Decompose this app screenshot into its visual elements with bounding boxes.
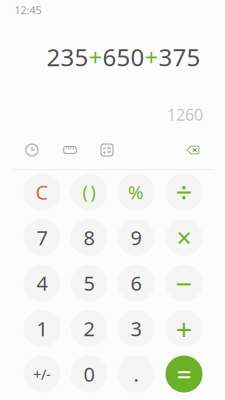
staticText: 6: [130, 270, 141, 296]
button[interactable]: 1: [23, 310, 60, 347]
staticText: 375: [158, 41, 200, 73]
button[interactable]: 4: [23, 264, 60, 301]
staticText: ( ): [82, 180, 95, 203]
staticText: +: [175, 309, 192, 348]
staticText: −: [175, 263, 192, 302]
staticText: .: [133, 361, 138, 387]
staticText: +/-: [33, 364, 51, 384]
button[interactable]: 7: [23, 219, 60, 256]
staticText: +: [144, 41, 158, 73]
button[interactable]: Backspace: [177, 137, 209, 163]
button[interactable]: History: [17, 137, 47, 163]
button[interactable]: ÷: [165, 173, 202, 210]
staticText: ÷: [175, 172, 192, 211]
button[interactable]: 2: [70, 310, 107, 347]
staticText: +: [88, 41, 102, 73]
button[interactable]: 3: [117, 310, 154, 347]
staticText: 4: [36, 270, 47, 296]
staticText: 1260: [167, 104, 203, 125]
staticText: 650: [102, 41, 144, 73]
staticText: 2: [83, 315, 94, 342]
button[interactable]: 6: [117, 264, 154, 301]
button[interactable]: −: [165, 264, 202, 301]
button[interactable]: Unit converter: [55, 137, 85, 163]
button[interactable]: 9: [117, 219, 154, 256]
button[interactable]: +: [165, 310, 202, 347]
staticText: 1: [36, 315, 47, 342]
staticText: 7: [36, 224, 47, 251]
button[interactable]: ×: [165, 219, 202, 256]
button[interactable]: 0: [70, 355, 107, 392]
staticText: 5: [83, 270, 94, 296]
button[interactable]: C: [23, 173, 60, 210]
staticText: 3: [130, 315, 141, 342]
staticText: 235: [46, 41, 88, 73]
button[interactable]: ( ): [70, 173, 107, 210]
button[interactable]: 5: [70, 264, 107, 301]
staticText: C: [35, 179, 48, 205]
staticText: 0: [83, 361, 94, 387]
staticText: 12:45: [14, 3, 41, 17]
staticText: ×: [176, 220, 191, 255]
button[interactable]: =: [165, 355, 202, 392]
button[interactable]: +/-: [23, 355, 60, 392]
button[interactable]: 8: [70, 219, 107, 256]
button[interactable]: Scientific calculator: [92, 137, 122, 163]
staticText: 8: [83, 224, 94, 251]
staticText: =: [176, 356, 191, 392]
staticText: %: [128, 180, 144, 204]
button[interactable]: .: [117, 355, 154, 392]
staticText: 9: [130, 224, 141, 251]
button[interactable]: %: [117, 173, 154, 210]
